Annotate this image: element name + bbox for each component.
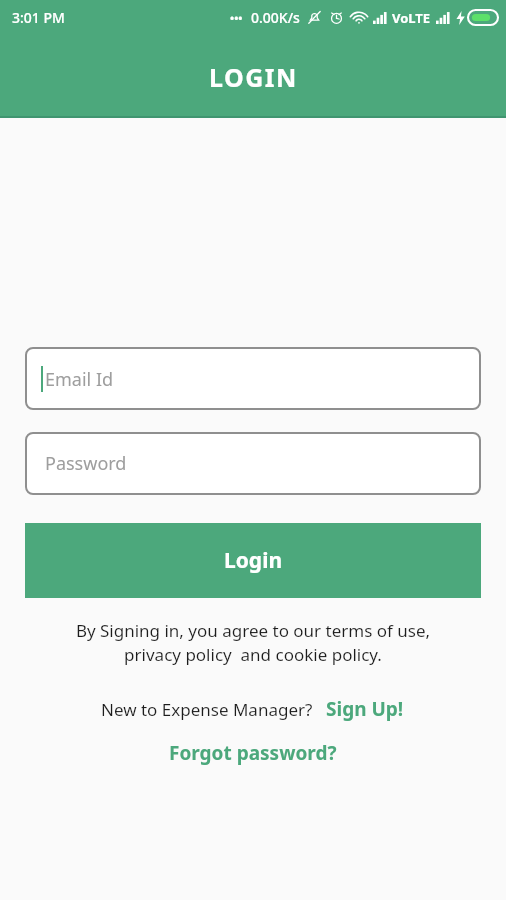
staticText: By Signing in, you agree to our terms of… xyxy=(14,619,492,666)
staticText: VoLTE xyxy=(392,9,431,27)
button[interactable]: Password xyxy=(25,432,481,495)
staticText: 3:01 PM xyxy=(12,8,65,27)
staticText: Sign Up! xyxy=(326,696,404,722)
staticText: Login xyxy=(224,546,283,575)
staticText: 0.00K/s xyxy=(251,8,300,27)
staticText: Forgot password? xyxy=(169,740,337,766)
staticText: Password xyxy=(45,451,127,476)
staticText: ••• xyxy=(230,10,243,25)
button[interactable]: Forgot password? xyxy=(165,738,341,768)
staticText: Email Id xyxy=(45,367,114,392)
staticText: LOGIN xyxy=(209,60,298,94)
button[interactable]: Email Id xyxy=(25,347,481,410)
button[interactable]: Sign Up! xyxy=(324,694,406,724)
staticText: New to Expense Manager? xyxy=(101,698,313,721)
button[interactable]: Login xyxy=(25,523,481,598)
